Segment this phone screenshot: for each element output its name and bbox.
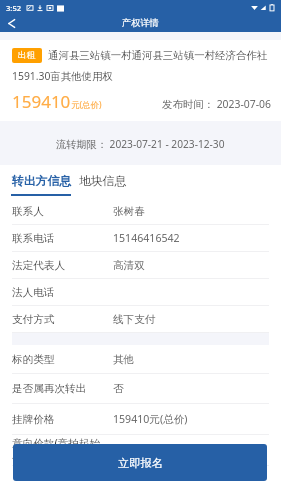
button[interactable]: 法人电话 xyxy=(12,279,269,305)
staticText: 支付方式 xyxy=(12,313,113,326)
staticText: 是否属再次转出 xyxy=(12,382,113,395)
button[interactable]: 是否属再次转出 xyxy=(12,374,269,403)
button[interactable]: 地块信息 xyxy=(79,174,127,198)
staticText: 高清双 xyxy=(113,259,145,272)
button[interactable]: 挂牌价格 xyxy=(12,404,269,434)
staticText: 元(总价) xyxy=(71,99,102,111)
button[interactable]: 联系电话 xyxy=(12,225,269,251)
staticText: 转出方信息 xyxy=(12,174,71,189)
staticText: 出租 xyxy=(18,50,36,61)
button[interactable]: 转出方信息 xyxy=(11,174,71,198)
staticText: 标的类型 xyxy=(12,353,113,366)
staticText: 线下支付 xyxy=(113,313,156,326)
button[interactable]: 意向价款(竞拍起始价) xyxy=(12,435,269,465)
staticText: 挂牌价格 xyxy=(12,413,113,426)
staticText: 产权详情 xyxy=(122,17,159,29)
button[interactable]: 法定代表人 xyxy=(12,252,269,278)
staticText: 其他 xyxy=(113,353,135,366)
button[interactable]: Back xyxy=(0,15,22,32)
staticText: 法人电话 xyxy=(12,286,113,299)
staticText: 1591.30亩其他使用权 xyxy=(12,69,113,83)
staticText: 法定代表人 xyxy=(12,259,113,272)
staticText: 3:52 xyxy=(6,3,22,13)
staticText: 159410元(总价) xyxy=(113,412,188,426)
staticText: 159410 xyxy=(12,90,71,113)
staticText: 通河县三站镇一村通河县三站镇一村经济合作社 xyxy=(48,49,272,62)
staticText: 地块信息 xyxy=(79,174,127,189)
button[interactable]: 支付方式 xyxy=(12,306,269,332)
staticText: 立即报名 xyxy=(118,456,163,470)
staticText: 张树春 xyxy=(113,205,145,218)
staticText: 15146416542 xyxy=(113,231,180,245)
button[interactable]: 标的类型 xyxy=(12,345,269,373)
staticText: 159410元(总价) xyxy=(113,443,188,457)
staticText: 流转期限： 2023-07-21 - 2023-12-30 xyxy=(56,137,225,151)
staticText: 联系电话 xyxy=(12,232,113,245)
staticText: 联系人 xyxy=(12,205,113,218)
staticText: 意向价款(竞拍起始价) xyxy=(12,436,113,465)
staticText: 发布时间： 2023-07-06 xyxy=(162,97,271,111)
staticText: 否 xyxy=(113,382,124,395)
button[interactable]: 立即报名 xyxy=(13,444,267,481)
button[interactable]: 联系人 xyxy=(12,198,269,224)
